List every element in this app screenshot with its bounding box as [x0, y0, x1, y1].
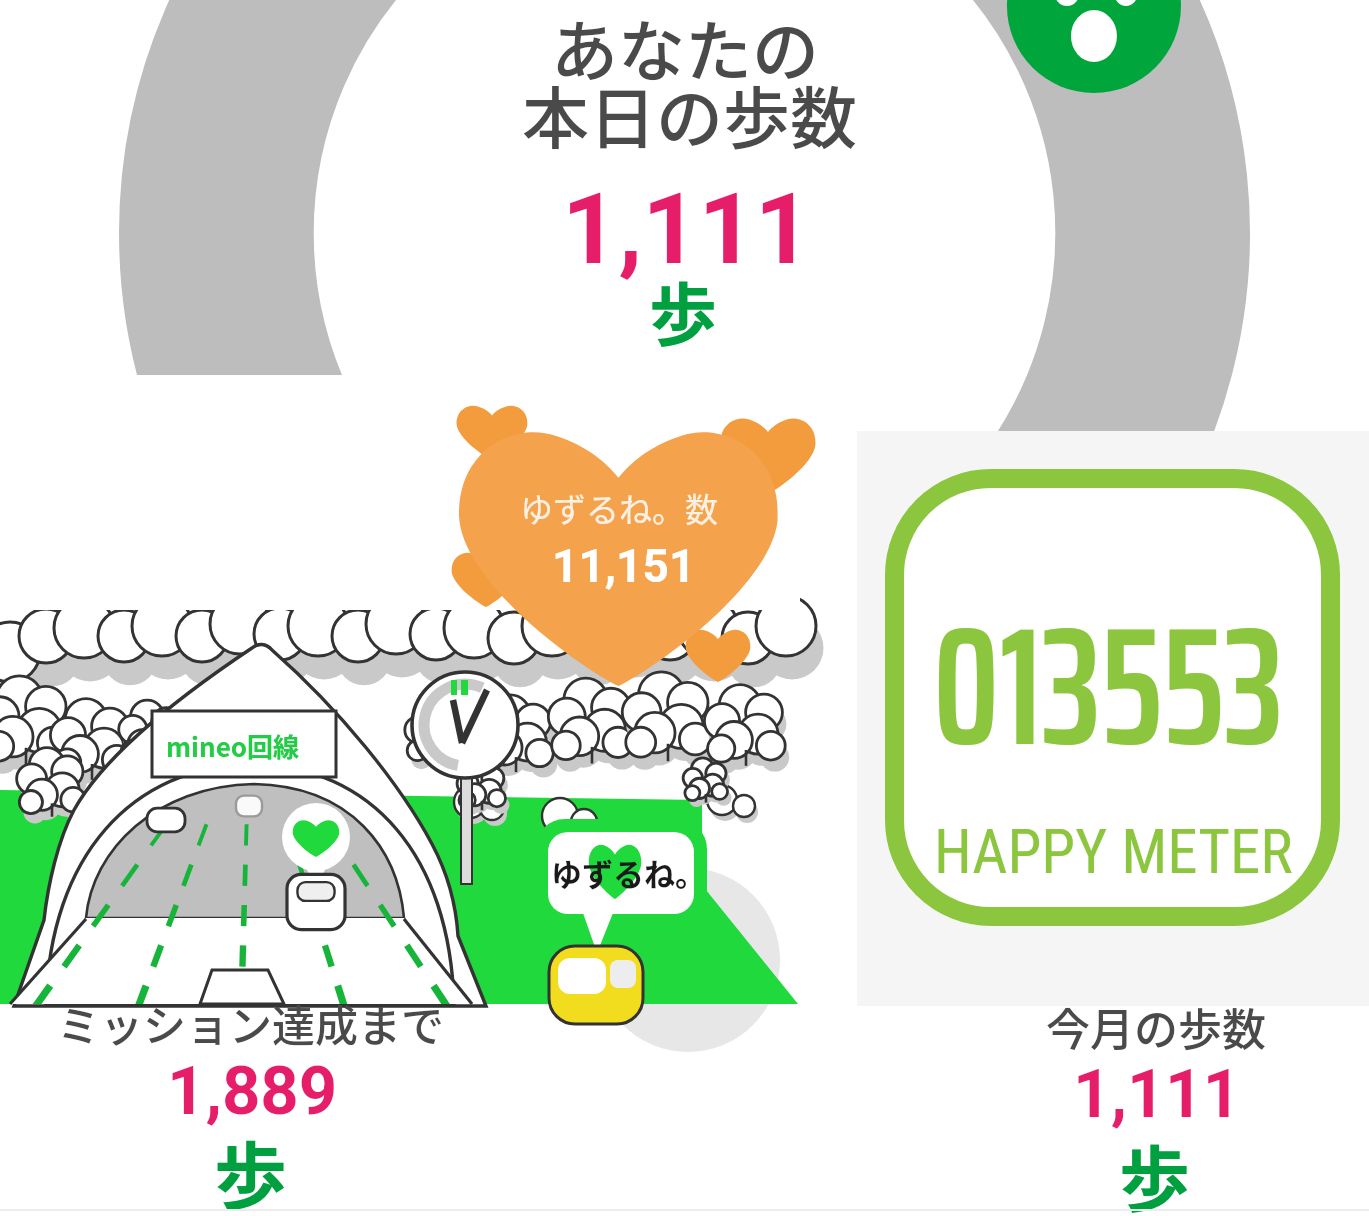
staticText: 歩 — [1119, 1123, 1191, 1216]
button[interactable]: Today's steps — [0, 0, 857, 431]
staticText: 1,889 — [167, 1052, 338, 1131]
staticText: ミッション達成まで — [57, 992, 444, 1054]
staticText: 本日の歩数 — [522, 65, 857, 162]
staticText: 013553 — [933, 556, 1284, 806]
button[interactable]: Happy meter — [857, 431, 1369, 1006]
staticText: ゆずるね。数 — [520, 484, 718, 532]
button[interactable]: Steps this month — [857, 1006, 1369, 1216]
staticText: 今月の歩数 — [1046, 995, 1266, 1059]
staticText: あなたの — [551, 0, 819, 95]
staticText: 11,151 — [552, 539, 696, 593]
staticText: mineo回線 — [166, 727, 300, 765]
staticText: 歩 — [214, 1118, 287, 1216]
staticText: HAPPY METER — [934, 816, 1293, 887]
staticText: 1,111 — [562, 172, 812, 287]
staticText: 1,111 — [1073, 1056, 1241, 1133]
button[interactable]: Mission progress — [0, 431, 857, 1216]
staticText: 歩 — [649, 261, 718, 359]
staticText: ゆずるね。 — [551, 850, 706, 895]
